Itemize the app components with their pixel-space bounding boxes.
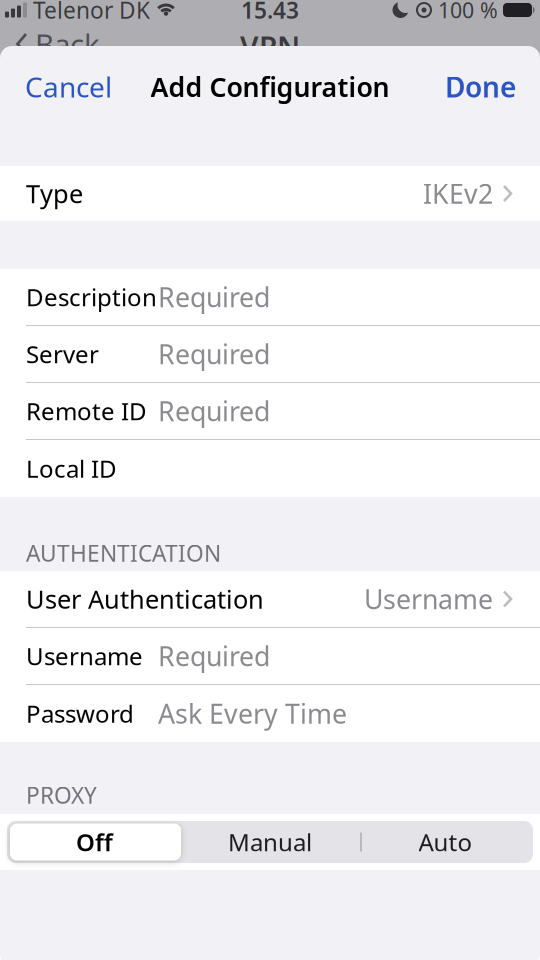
button[interactable]: Auto <box>358 821 533 863</box>
staticText: IKEv2 <box>423 176 493 211</box>
button[interactable]: Type <box>0 166 540 221</box>
button[interactable]: Off <box>7 821 182 863</box>
button[interactable]: Description <box>0 269 540 326</box>
button[interactable]: Done <box>445 68 516 105</box>
staticText: Required <box>158 638 270 674</box>
button[interactable]: Remote ID <box>0 383 540 440</box>
staticText: Server <box>26 338 99 370</box>
button[interactable]: Manual <box>182 821 358 863</box>
staticText: Auto <box>418 826 472 858</box>
button[interactable]: Username <box>0 628 540 685</box>
staticText: Required <box>158 393 270 429</box>
staticText: VPN <box>240 26 300 65</box>
staticText: Username <box>364 581 493 617</box>
button[interactable]: Cancel <box>25 68 112 105</box>
staticText: Add Configuration <box>150 69 389 104</box>
staticText: Remote ID <box>26 395 147 427</box>
button[interactable]: Server <box>0 326 540 383</box>
button[interactable]: User Authentication <box>0 571 540 628</box>
staticText: Off <box>76 826 113 858</box>
staticText: AUTHENTICATION <box>26 538 221 568</box>
staticText: 15.43 <box>241 0 299 25</box>
staticText: Cancel <box>25 68 112 105</box>
staticText: Local ID <box>26 453 117 484</box>
staticText: PROXY <box>26 780 97 810</box>
button[interactable]: Local ID <box>0 440 540 497</box>
staticText: Type <box>26 177 83 210</box>
staticText: Password <box>26 698 134 729</box>
staticText: 100 % <box>438 0 498 24</box>
staticText: Telenor DK <box>33 0 150 25</box>
staticText: Manual <box>228 826 312 858</box>
staticText: Required <box>158 336 270 372</box>
staticText: Description <box>26 281 157 313</box>
staticText: Back <box>35 24 100 63</box>
staticText: Username <box>26 640 143 672</box>
staticText: Required <box>158 279 270 315</box>
staticText: User Authentication <box>26 582 264 616</box>
staticText: Done <box>445 68 516 105</box>
staticText: Ask Every Time <box>158 696 347 731</box>
button[interactable]: Password <box>0 685 540 742</box>
